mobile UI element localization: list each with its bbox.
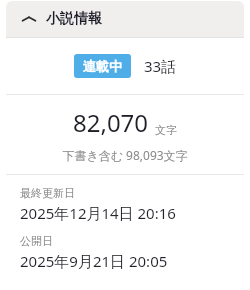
staticText: 82,070 [73, 106, 149, 139]
other: 折りたたむ [20, 10, 38, 28]
staticText: 文字 [155, 123, 177, 137]
staticText: 最終更新日 [20, 186, 75, 200]
staticText: 小説情報 [46, 10, 102, 28]
staticText: 2025年12月14日 20:16 [20, 203, 176, 223]
staticText: 下書き含む 98,093文字 [62, 147, 188, 163]
staticText: 33話 [144, 56, 177, 76]
staticText: 公開日 [20, 234, 53, 248]
button[interactable]: 連載中 [74, 54, 131, 78]
button[interactable]: 折りたたむ [6, 1, 244, 37]
staticText: 2025年9月21日 20:05 [20, 251, 168, 271]
staticText: 連載中 [83, 58, 122, 74]
